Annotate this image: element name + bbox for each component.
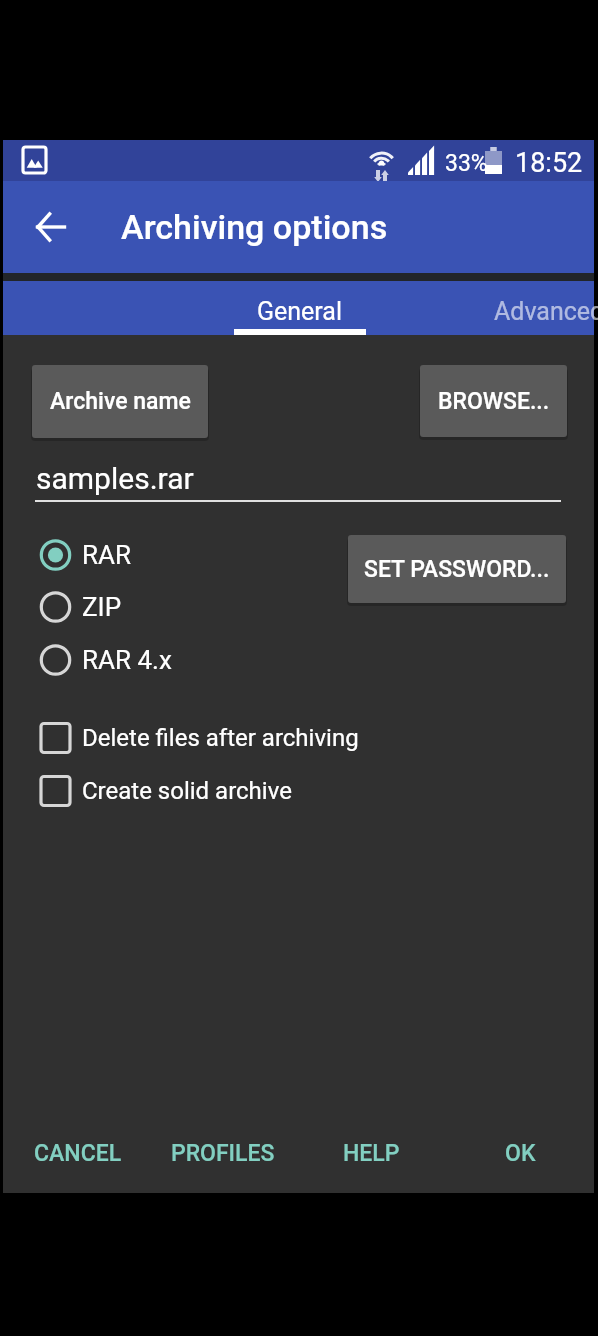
staticText: 18:52 [515, 147, 583, 179]
staticText: ZIP [82, 592, 122, 622]
button[interactable]: OK [503, 1127, 538, 1179]
staticText: OK [505, 1140, 536, 1167]
button[interactable]: RAR 4.x [33, 634, 283, 686]
staticText: Archive name [50, 388, 191, 415]
button[interactable]: ZIP [33, 581, 283, 633]
staticText: SET PASSWORD... [364, 556, 550, 583]
button[interactable]: SET PASSWORD... [348, 535, 566, 603]
staticText: Archiving options [121, 207, 388, 247]
button[interactable]: Back [17, 194, 83, 260]
button[interactable]: samples.rar [35, 448, 561, 502]
button[interactable]: Archive name [32, 365, 208, 438]
staticText: samples.rar [36, 461, 194, 496]
button[interactable]: BROWSE... [420, 365, 567, 437]
staticText: PROFILES [171, 1140, 275, 1167]
staticText: HELP [343, 1140, 400, 1167]
staticText: RAR 4.x [82, 645, 172, 675]
staticText: Advanced [494, 297, 598, 326]
staticText: 33% [445, 150, 488, 177]
button[interactable]: General [231, 281, 369, 335]
staticText: BROWSE... [438, 388, 550, 415]
staticText: General [257, 297, 343, 326]
button[interactable]: PROFILES [169, 1127, 277, 1179]
button[interactable]: RAR [33, 529, 283, 581]
button[interactable]: Advanced [473, 281, 594, 335]
staticText: Delete files after archiving [82, 724, 359, 752]
button[interactable]: HELP [341, 1127, 402, 1179]
staticText: Create solid archive [82, 777, 292, 805]
staticText: RAR [82, 540, 132, 570]
button[interactable]: Create solid archive [33, 765, 413, 817]
button[interactable]: CANCEL [32, 1127, 124, 1179]
button[interactable]: Delete files after archiving [33, 712, 413, 764]
staticText: CANCEL [34, 1140, 122, 1167]
